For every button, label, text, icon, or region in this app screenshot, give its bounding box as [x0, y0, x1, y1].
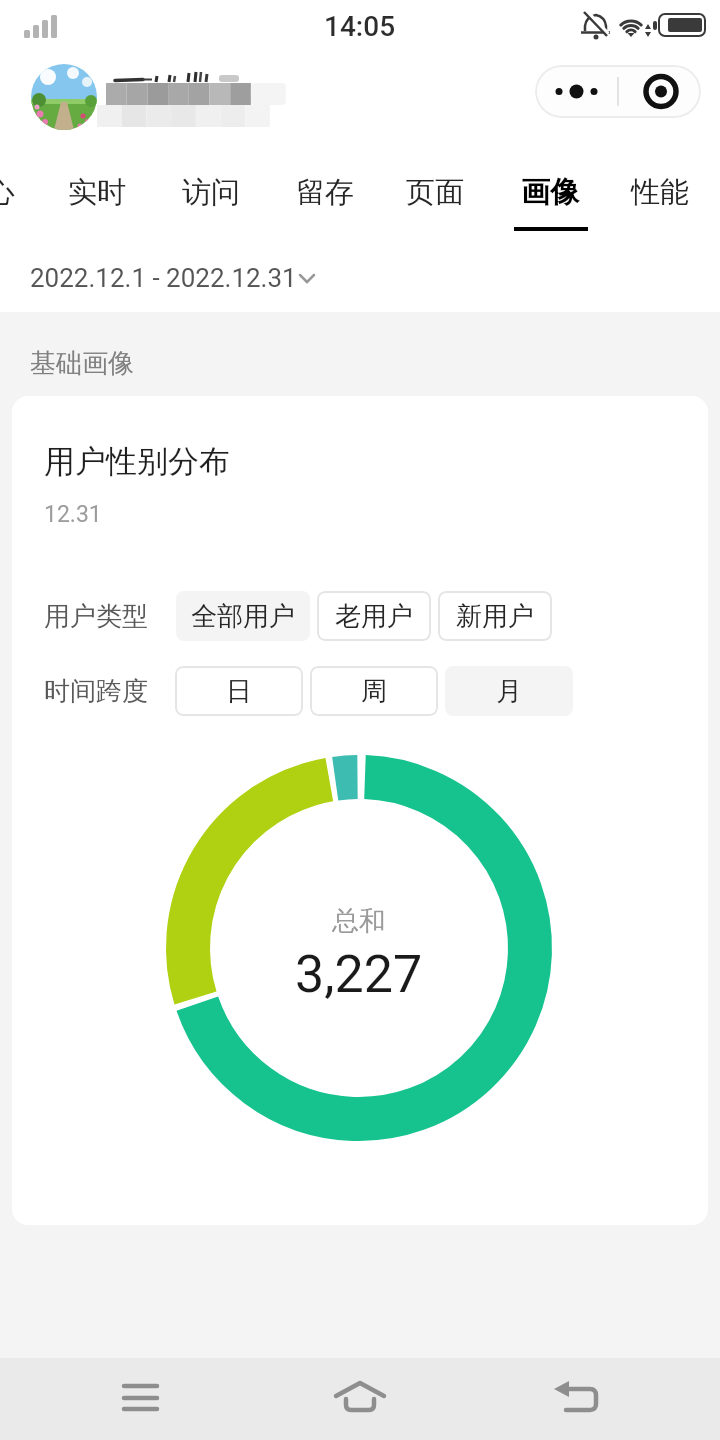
staticText: 3,227 [295, 944, 423, 1005]
staticText: 性能 [631, 174, 689, 211]
staticText: 访问 [182, 174, 240, 211]
button[interactable]: 访问 [166, 166, 256, 218]
button[interactable]: 实时 [52, 166, 142, 218]
staticText: 用户类型 [44, 600, 148, 633]
staticText: 老用户 [335, 600, 413, 633]
button[interactable] [500, 1360, 660, 1438]
button[interactable]: 新用户 [438, 591, 552, 641]
staticText: 14:05 [324, 10, 396, 43]
button[interactable] [535, 65, 701, 118]
staticText: 月 [496, 675, 522, 708]
staticText: 基础画像 [30, 347, 134, 380]
staticText: 2022.12.1 - 2022.12.31 [30, 263, 297, 293]
staticText: 画像 [521, 174, 579, 211]
staticText: 新用户 [456, 600, 534, 633]
button[interactable]: 月 [445, 666, 573, 716]
button[interactable]: 画像 [505, 166, 595, 218]
staticText: 全部用户 [191, 600, 295, 633]
staticText: 实时 [68, 174, 126, 211]
button[interactable]: 周 [310, 666, 438, 716]
staticText: 时间跨度 [44, 675, 148, 708]
button[interactable]: 心 [0, 166, 45, 218]
staticText: 周 [361, 675, 387, 708]
button[interactable]: 留存 [280, 166, 370, 218]
button[interactable] [60, 1360, 220, 1438]
staticText: 心 [0, 174, 15, 211]
staticText: 日 [226, 675, 252, 708]
button[interactable]: 老用户 [317, 591, 431, 641]
staticText: 用户性别分布 [44, 442, 230, 481]
staticText: 页面 [406, 174, 464, 211]
button[interactable]: 性能 [615, 166, 705, 218]
button[interactable]: 全部用户 [176, 591, 310, 641]
staticText: 总和 [332, 904, 386, 938]
button[interactable]: 2022.12.1 - 2022.12.31 [20, 252, 330, 304]
button[interactable] [31, 64, 97, 130]
button[interactable]: 页面 [390, 166, 480, 218]
button[interactable]: 日 [175, 666, 303, 716]
staticText: 留存 [296, 174, 354, 211]
button[interactable] [280, 1360, 440, 1438]
staticText: 12.31 [44, 501, 102, 528]
